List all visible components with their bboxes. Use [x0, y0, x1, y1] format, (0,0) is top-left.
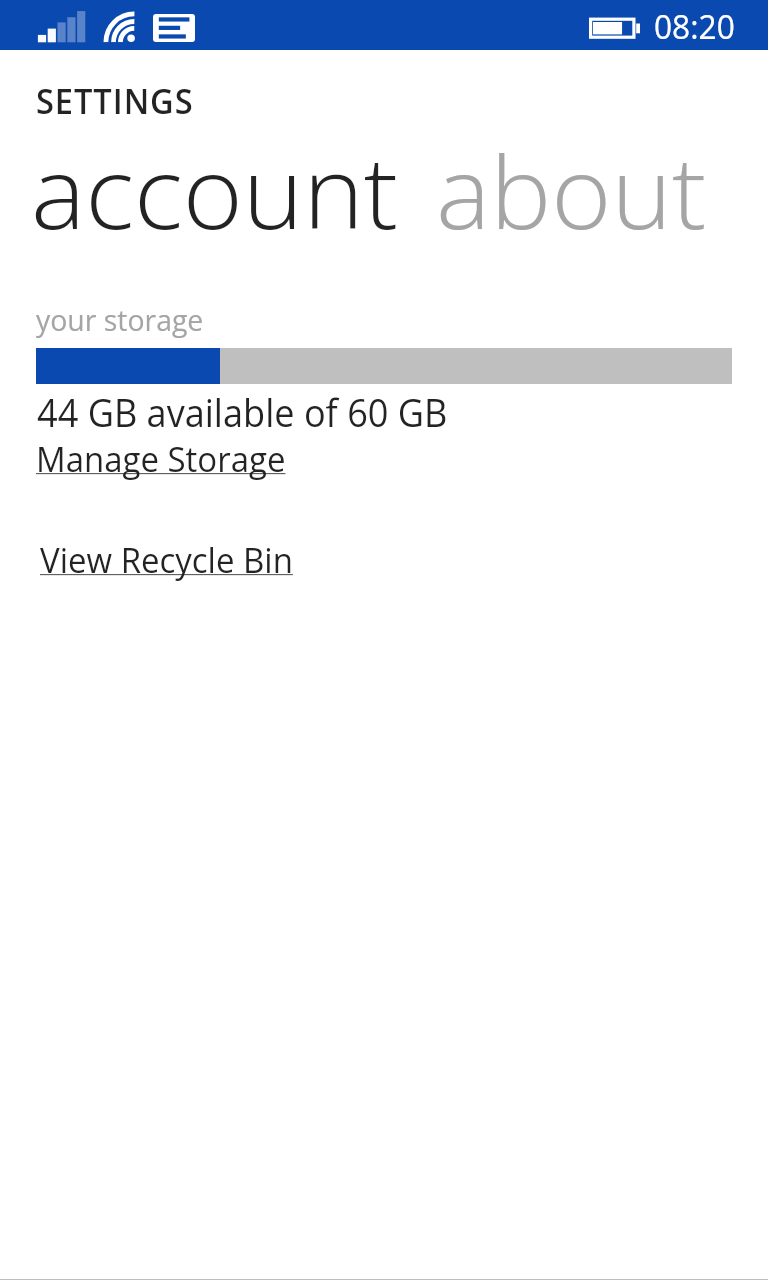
staticText: 44 GB available of 60 GB [37, 386, 447, 438]
button[interactable]: about [436, 122, 700, 258]
button[interactable]: account [31, 122, 390, 258]
staticText: your storage [36, 300, 204, 339]
staticText: SETTINGS [36, 77, 194, 124]
button[interactable]: View Recycle Bin [40, 537, 301, 583]
staticText: 08:20 [654, 4, 736, 49]
button[interactable]: Manage Storage [36, 436, 294, 482]
other: Messages [153, 14, 195, 42]
